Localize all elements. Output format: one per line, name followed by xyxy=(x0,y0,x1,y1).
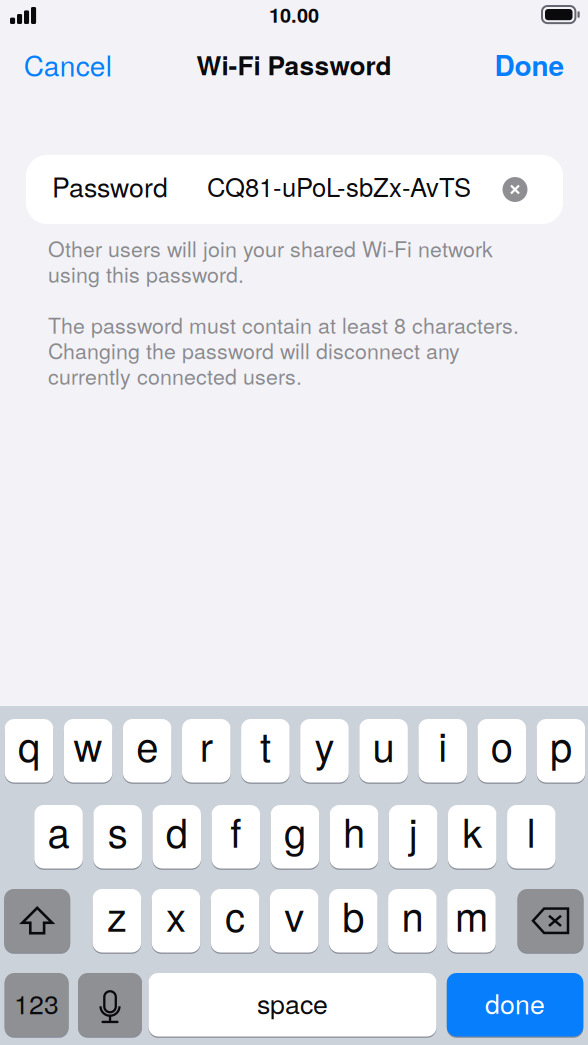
staticText: h xyxy=(343,802,365,859)
button[interactable]: Delete xyxy=(517,889,583,952)
staticText: x xyxy=(166,886,186,943)
staticText: Changing the password will disconnect an… xyxy=(48,335,460,365)
button[interactable]: w xyxy=(64,719,112,782)
staticText: g xyxy=(284,802,306,859)
staticText: Cancel xyxy=(24,44,112,85)
button[interactable]: done xyxy=(447,973,583,1036)
button[interactable]: g xyxy=(271,805,319,868)
staticText: CQ81-uPoL-sbZx-AvTS xyxy=(207,168,471,204)
button[interactable]: l xyxy=(507,805,556,868)
staticText: using this password. xyxy=(48,258,244,289)
button[interactable]: 123 xyxy=(5,973,69,1036)
staticText: z xyxy=(107,886,127,943)
staticText: u xyxy=(373,716,395,773)
staticText: space xyxy=(257,984,328,1022)
button[interactable]: r xyxy=(182,719,231,782)
button[interactable]: c xyxy=(211,889,259,952)
staticText: b xyxy=(342,886,364,943)
staticText: w xyxy=(74,716,103,773)
staticText: k xyxy=(462,802,482,859)
staticText: q xyxy=(18,716,40,773)
staticText: i xyxy=(438,716,447,773)
staticText: Done xyxy=(495,44,565,85)
staticText: s xyxy=(108,802,128,859)
button[interactable]: Shift xyxy=(4,889,70,952)
button[interactable]: e xyxy=(123,719,171,782)
button[interactable]: j xyxy=(389,805,437,868)
staticText: y xyxy=(314,716,334,773)
staticText: 123 xyxy=(14,984,59,1022)
staticText: a xyxy=(47,802,69,859)
button[interactable]: d xyxy=(152,805,201,868)
staticText: currently connected users. xyxy=(48,360,302,391)
staticText: c xyxy=(225,886,245,943)
button[interactable]: i xyxy=(418,719,467,782)
staticText: t xyxy=(260,716,271,773)
staticText: n xyxy=(401,886,423,943)
staticText: e xyxy=(136,716,158,773)
button[interactable]: z xyxy=(93,889,141,952)
button[interactable]: b xyxy=(329,889,378,952)
staticText: f xyxy=(230,802,241,859)
button[interactable]: k xyxy=(448,805,497,868)
button[interactable]: n xyxy=(388,889,437,952)
button[interactable]: p xyxy=(537,719,585,782)
button[interactable]: u xyxy=(359,719,408,782)
staticText: done xyxy=(485,984,545,1022)
button[interactable]: v xyxy=(270,889,318,952)
button[interactable]: t xyxy=(241,719,290,782)
button[interactable]: o xyxy=(477,719,526,782)
button[interactable]: a xyxy=(34,805,83,868)
staticText: The password must contain at least 8 cha… xyxy=(48,309,519,340)
button[interactable]: f xyxy=(212,805,260,868)
staticText: 10.00 xyxy=(269,0,319,29)
staticText: m xyxy=(455,886,488,943)
staticText: j xyxy=(409,802,418,859)
button[interactable]: m xyxy=(447,889,496,952)
staticText: r xyxy=(200,716,213,773)
button[interactable]: q xyxy=(5,719,53,782)
staticText: Wi-Fi Password xyxy=(196,46,391,83)
staticText: Password xyxy=(52,167,168,205)
button[interactable]: x xyxy=(152,889,200,952)
button[interactable]: h xyxy=(330,805,378,868)
staticText: l xyxy=(527,802,536,859)
button[interactable]: Clear password xyxy=(493,167,537,211)
staticText: p xyxy=(550,716,572,773)
button[interactable]: Cancel xyxy=(24,41,134,87)
staticText: v xyxy=(284,886,304,943)
staticText: d xyxy=(166,802,188,859)
button[interactable]: y xyxy=(300,719,349,782)
button[interactable]: s xyxy=(93,805,142,868)
button[interactable]: space xyxy=(148,973,436,1036)
staticText: o xyxy=(491,716,513,773)
button[interactable]: Dictation xyxy=(78,973,142,1036)
staticText: Other users will join your shared Wi-Fi … xyxy=(48,233,493,263)
button[interactable]: Done xyxy=(465,41,565,87)
